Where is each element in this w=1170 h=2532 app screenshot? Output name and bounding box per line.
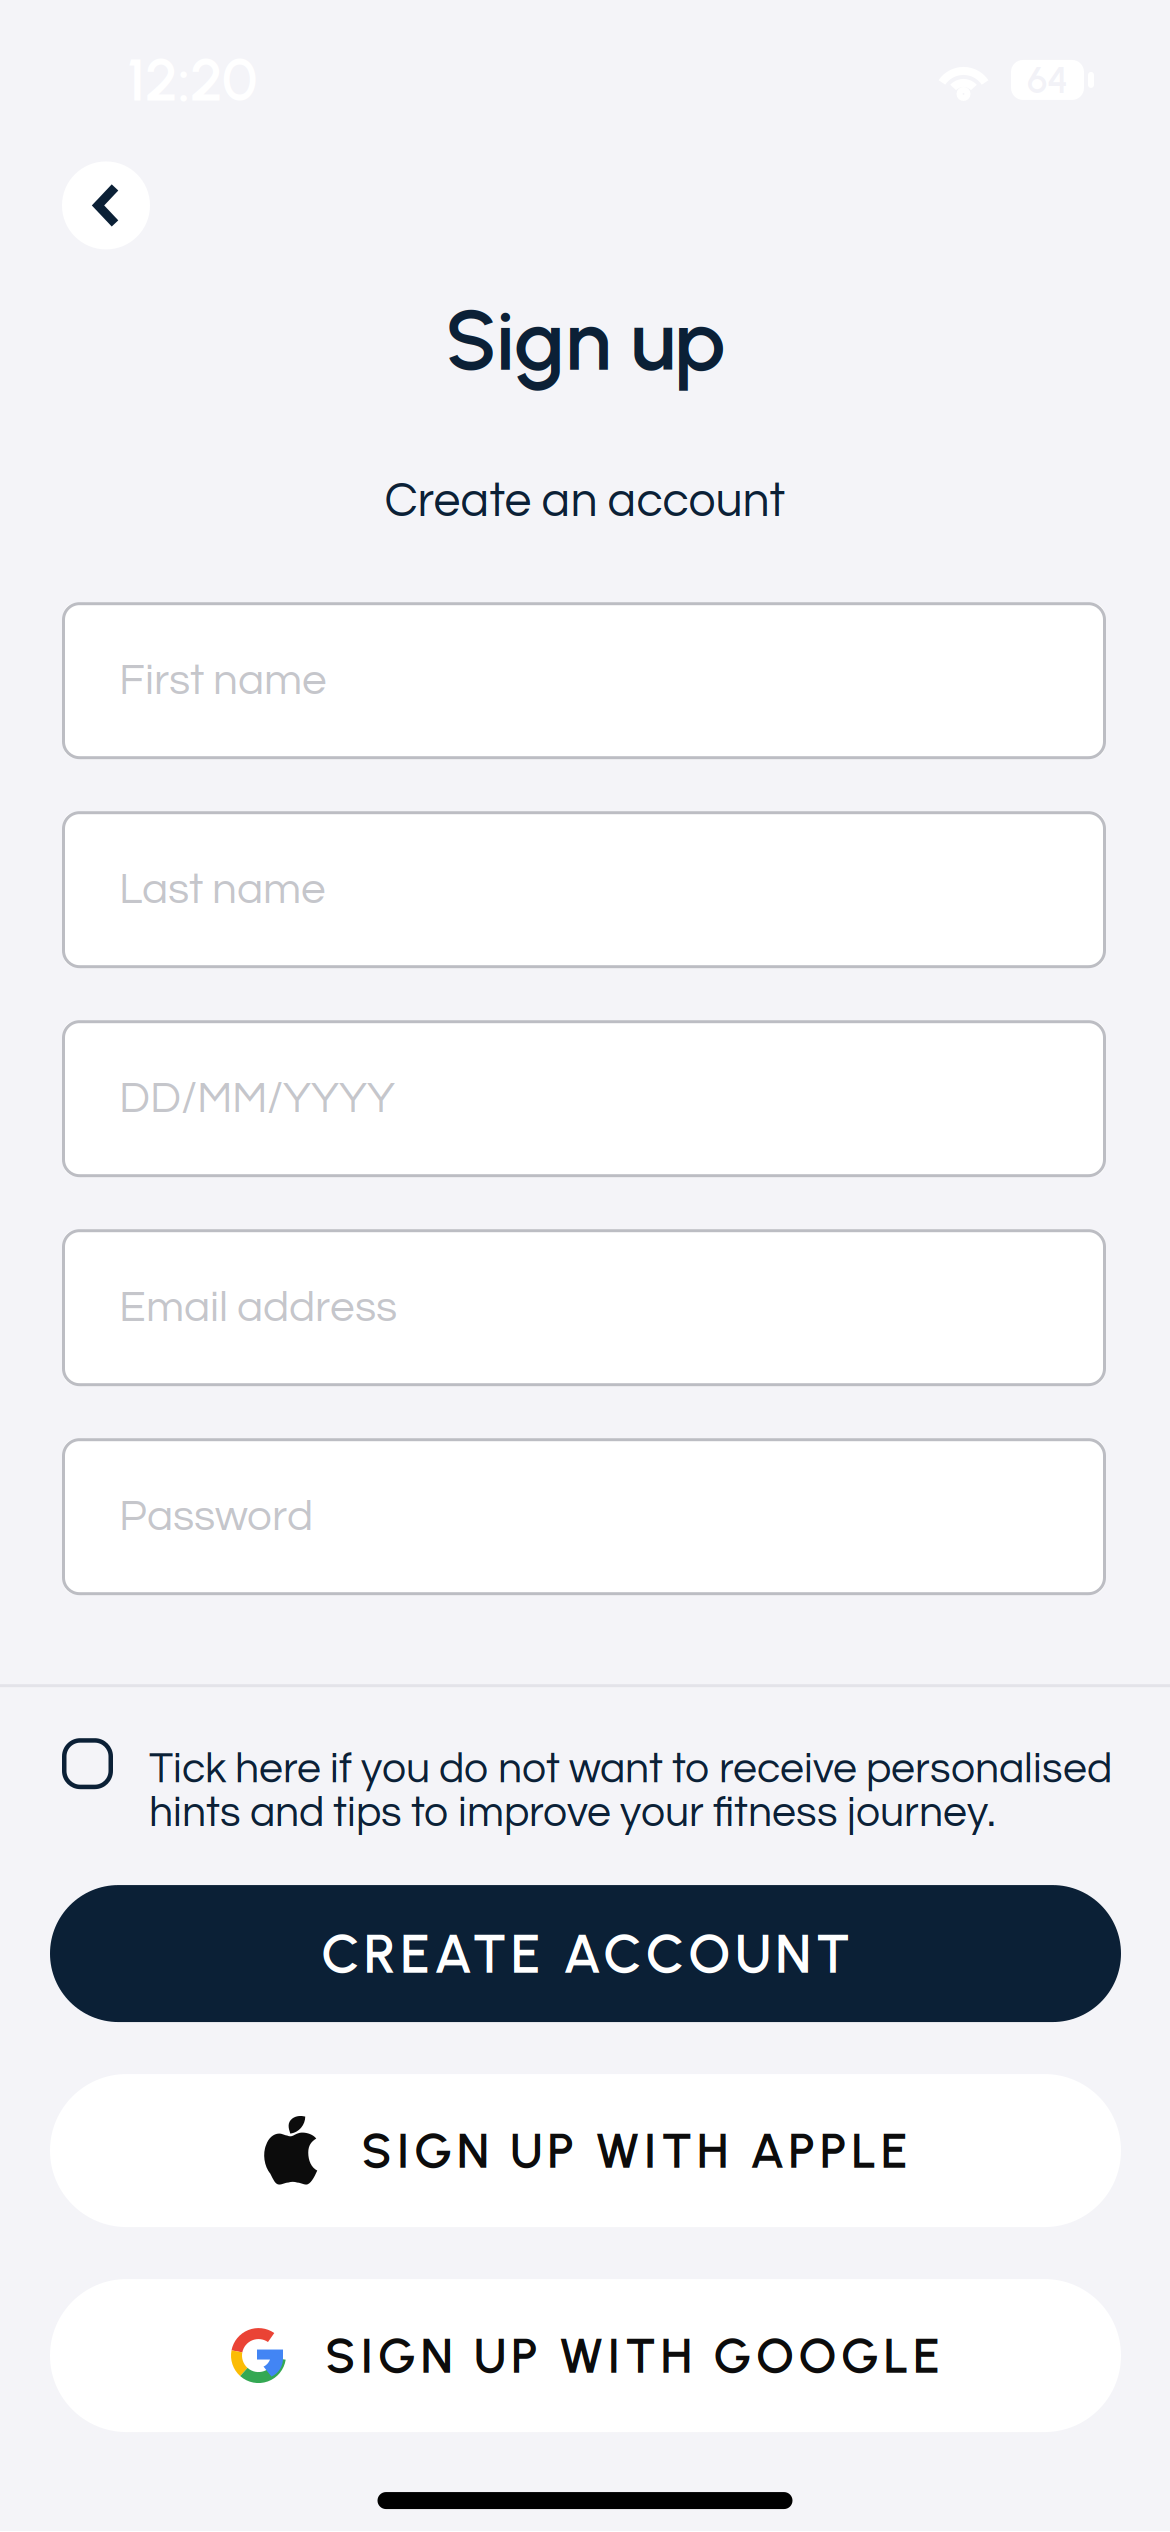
button[interactable]: SIGN UP WITH GOOGLE [50,2279,1121,2432]
button[interactable]: CREATE ACCOUNT [50,1885,1121,2022]
staticText: DD/MM/YYYY [119,1076,395,1121]
staticText: Tick here if you do not want to receive … [149,1747,1112,1835]
button[interactable]: SIGN UP WITH APPLE [50,2074,1121,2227]
staticText: Create an account [384,477,785,526]
button[interactable]: First name [62,602,1106,759]
staticText: Sign up [445,290,725,391]
button[interactable]: Last name [62,811,1106,968]
staticText: First name [119,658,327,703]
staticText: SIGN UP WITH GOOGLE [325,2326,940,2385]
button[interactable]: DD/MM/YYYY [62,1020,1106,1177]
staticText: CREATE ACCOUNT [321,1921,850,1986]
button[interactable]: Password [62,1438,1106,1595]
button[interactable]: Tick here if you do not want to receive … [0,1747,1170,1835]
staticText: SIGN UP WITH APPLE [361,2121,908,2180]
staticText: Last name [119,867,326,912]
staticText: Email address [119,1285,397,1330]
staticText: 12:20 [127,45,257,115]
staticText: Password [119,1494,313,1539]
button[interactable]: Email address [62,1229,1106,1386]
button[interactable]: Back [62,160,150,251]
staticText: 64 [1027,57,1068,102]
